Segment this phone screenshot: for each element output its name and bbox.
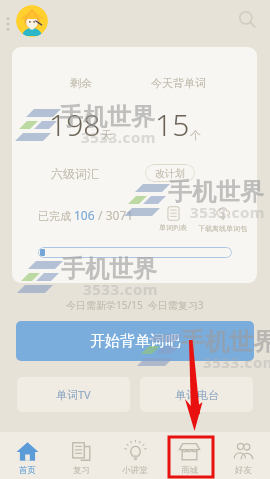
staticText: 3533.com [190, 202, 266, 222]
staticText: 天 [101, 128, 112, 142]
staticText: 单词电台 [175, 388, 219, 402]
staticText: 开始背单词吧 [90, 332, 180, 351]
staticText: 商城 [181, 465, 198, 476]
button[interactable]: 小讲堂 [108, 432, 162, 479]
staticText: 手机世界 [181, 327, 270, 357]
staticText: 单词TV [56, 387, 91, 402]
staticText: 3533.com [83, 279, 159, 299]
button[interactable]: 商城 [162, 432, 216, 479]
staticText: 六级词汇 [51, 166, 99, 181]
button[interactable]: Search [237, 9, 258, 30]
button[interactable]: 首页 [0, 432, 54, 479]
staticText: 今日需新学15/15 今日需复习3 [66, 298, 204, 312]
staticText: 已完成 [38, 208, 74, 223]
button[interactable]: 下载离线单词包 [198, 206, 247, 233]
button[interactable]: Profile [16, 5, 48, 37]
staticText: 单词列表 [159, 223, 187, 232]
staticText: 今天背单词 [151, 76, 206, 90]
button[interactable]: 好友 [216, 432, 270, 479]
button[interactable]: 单词列表 [159, 206, 187, 232]
staticText: 首页 [19, 465, 36, 476]
staticText: 下载离线单词包 [198, 224, 247, 233]
staticText: 198 [49, 104, 101, 145]
button[interactable]: 单词TV [17, 377, 130, 412]
staticText: 手机世界 [61, 254, 157, 284]
staticText: 剩余 [70, 76, 92, 90]
staticText: 好友 [235, 465, 252, 476]
staticText: 个 [190, 128, 201, 142]
button[interactable]: 复习 [54, 432, 108, 479]
staticText: 复习 [73, 465, 90, 476]
staticText: 改计划 [155, 167, 185, 180]
button[interactable]: 单词电台 [140, 377, 253, 412]
staticText: 手机世界 [59, 102, 155, 132]
button[interactable]: 开始背单词吧 [16, 321, 254, 361]
button[interactable]: 改计划 [145, 164, 195, 182]
staticText: 15 [155, 104, 190, 145]
staticText: / 3071 [95, 207, 134, 223]
staticText: 手机世界 [168, 177, 264, 207]
staticText: 3533.com [81, 127, 157, 147]
staticText: 106 [74, 207, 95, 223]
staticText: 小讲堂 [122, 465, 148, 476]
staticText: 3533.com [203, 352, 270, 372]
